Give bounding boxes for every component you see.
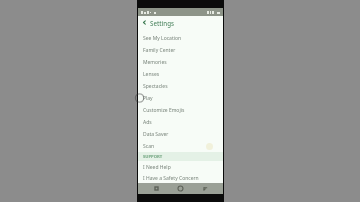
staticText: I Have a Safety Concern xyxy=(143,175,199,182)
button[interactable]: Scan xyxy=(138,140,223,152)
button[interactable]: I Have a Safety Concern xyxy=(138,173,223,183)
button[interactable]: Data Saver xyxy=(138,128,223,140)
staticText: Lenses xyxy=(143,71,160,78)
staticText: Family Center xyxy=(143,47,176,54)
staticText: See My Location xyxy=(143,35,182,42)
button[interactable]: I Need Help xyxy=(138,161,223,173)
button[interactable]: Customize Emojis xyxy=(138,104,223,116)
staticText: Customize Emojis xyxy=(143,107,185,114)
staticText: Ads xyxy=(143,119,152,126)
staticText: Settings xyxy=(150,19,175,27)
button[interactable]: Back xyxy=(199,183,210,194)
button[interactable]: Recents xyxy=(151,183,162,194)
staticText: Memories xyxy=(143,59,167,66)
button[interactable]: Ads xyxy=(138,116,223,128)
button[interactable]: Memories xyxy=(138,56,223,68)
staticText: Scan xyxy=(143,143,155,150)
button[interactable]: Back xyxy=(140,18,149,27)
staticText: Spectacles xyxy=(143,83,168,90)
staticText: I Need Help xyxy=(143,164,171,171)
button[interactable]: Home xyxy=(175,183,186,194)
button[interactable]: Play xyxy=(138,92,223,104)
staticText: Data Saver xyxy=(143,131,169,138)
button[interactable]: See My Location xyxy=(138,32,223,44)
button[interactable]: Spectacles xyxy=(138,80,223,92)
button[interactable]: Family Center xyxy=(138,44,223,56)
staticText: Play xyxy=(143,95,153,102)
button[interactable]: Lenses xyxy=(138,68,223,80)
staticText: SUPPORT xyxy=(143,154,163,160)
